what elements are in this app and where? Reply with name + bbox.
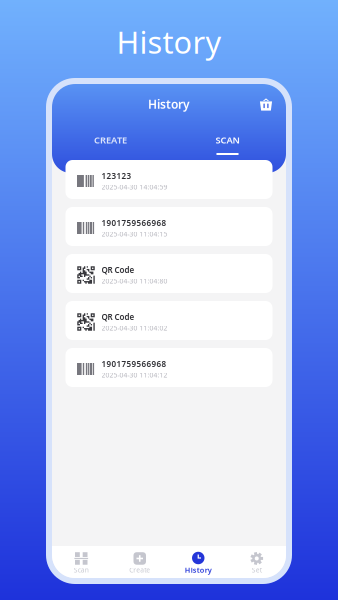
staticText: QR Code xyxy=(101,311,134,322)
staticText: 2025-04-30 11:04:02 xyxy=(101,323,167,332)
button[interactable]: QR Code xyxy=(65,301,272,340)
staticText: SCAN xyxy=(215,133,239,146)
staticText: CREATE xyxy=(94,133,127,146)
staticText: Set xyxy=(252,565,262,575)
staticText: Scan xyxy=(74,565,89,575)
button[interactable]: Set xyxy=(227,546,286,578)
button[interactable]: History xyxy=(169,546,227,578)
button[interactable]: QR Code xyxy=(65,254,272,293)
staticText: 2025-04-30 14:04:59 xyxy=(101,182,167,191)
staticText: 2025-04-30 11:04:12 xyxy=(101,370,167,379)
button[interactable]: CREATE xyxy=(52,132,169,155)
button[interactable]: 123123 xyxy=(65,160,272,199)
button[interactable]: 1901759566968 xyxy=(65,348,272,387)
staticText: 1901759566968 xyxy=(101,217,166,228)
button[interactable]: Create xyxy=(110,546,169,578)
staticText: 2025-04-30 11:04:80 xyxy=(101,276,167,285)
button[interactable]: SCAN xyxy=(169,132,286,155)
staticText: History xyxy=(116,21,221,63)
staticText: 1901759566968 xyxy=(101,358,166,369)
staticText: QR Code xyxy=(101,264,134,275)
staticText: 2025-04-30 11:04:15 xyxy=(101,229,167,238)
button[interactable]: Clear history xyxy=(254,92,278,116)
staticText: History xyxy=(148,96,190,112)
staticText: Create xyxy=(129,565,150,575)
button[interactable]: Scan xyxy=(52,546,110,578)
staticText: History xyxy=(185,565,212,575)
button[interactable]: 1901759566968 xyxy=(65,207,272,246)
staticText: 123123 xyxy=(101,170,131,181)
